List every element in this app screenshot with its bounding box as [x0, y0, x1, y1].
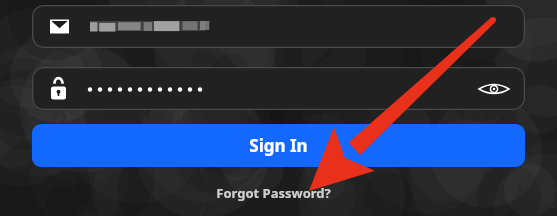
staticText: Forgot Password?: [216, 184, 331, 202]
button[interactable]: Show password: [32, 67, 525, 110]
button[interactable]: Forgot Password?: [203, 182, 343, 204]
button[interactable]: Sign In: [32, 124, 525, 167]
button[interactable]: Show password: [479, 74, 509, 104]
staticText: Sign In: [249, 134, 308, 157]
button[interactable]: [32, 5, 525, 48]
